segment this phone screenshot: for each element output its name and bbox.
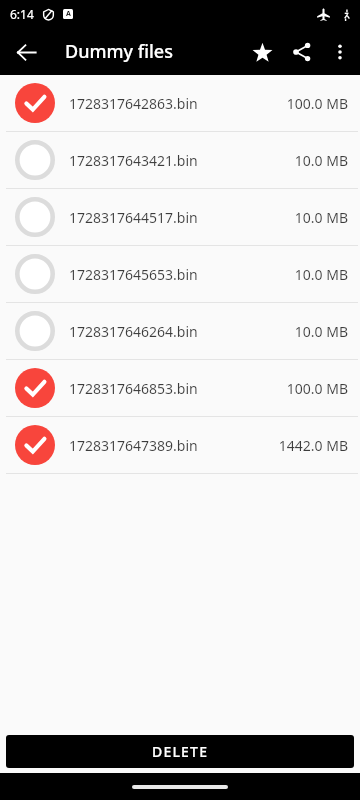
staticText: DELETE: [152, 742, 209, 761]
staticText: 1728317643421.bin: [69, 151, 294, 170]
button[interactable]: 1728317646264.bin: [0, 303, 360, 359]
staticText: 1728317644517.bin: [69, 208, 294, 227]
button[interactable]: 1728317644517.bin: [0, 189, 360, 245]
staticText: 100.0 MB: [286, 379, 348, 398]
button[interactable]: 1728317642863.bin: [0, 75, 360, 131]
staticText: 100.0 MB: [286, 94, 348, 113]
staticText: A: [66, 9, 71, 19]
button[interactable]: Favorite: [242, 32, 282, 72]
staticText: 1728317645653.bin: [69, 265, 294, 284]
button[interactable]: More options: [322, 34, 358, 70]
staticText: 1728317642863.bin: [69, 94, 286, 113]
button[interactable]: DELETE: [6, 735, 354, 768]
button[interactable]: 1728317647389.bin: [0, 417, 360, 473]
staticText: 6:14: [10, 6, 34, 22]
staticText: 1728317646853.bin: [69, 379, 286, 398]
staticText: 1728317647389.bin: [69, 436, 278, 455]
staticText: 1728317646264.bin: [69, 322, 294, 341]
button[interactable]: 1728317643421.bin: [0, 132, 360, 188]
staticText: 1442.0 MB: [278, 436, 348, 455]
button[interactable]: 1728317645653.bin: [0, 246, 360, 302]
staticText: 10.0 MB: [294, 208, 348, 227]
button[interactable]: Share: [282, 32, 322, 72]
staticText: 10.0 MB: [294, 151, 348, 170]
button[interactable]: 1728317646853.bin: [0, 360, 360, 416]
staticText: 10.0 MB: [294, 322, 348, 341]
staticText: Dummy files: [65, 39, 173, 64]
staticText: 10.0 MB: [294, 265, 348, 284]
button[interactable]: Back: [6, 32, 46, 72]
